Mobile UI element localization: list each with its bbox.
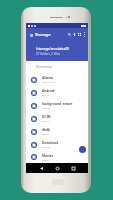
button[interactable]: Search xyxy=(67,32,72,37)
button[interactable]: Home xyxy=(53,164,61,172)
staticText: Apr 15 xyxy=(42,93,50,96)
staticText: Alarms xyxy=(42,76,54,80)
button[interactable]: Alarms xyxy=(26,73,88,86)
staticText: Movies xyxy=(42,154,54,158)
button[interactable]: Menu xyxy=(28,32,34,38)
staticText: dhdb xyxy=(42,128,51,132)
staticText: background_eraser xyxy=(42,102,73,106)
staticText: 27 Folders, 2 Files xyxy=(36,52,60,56)
button[interactable]: Back xyxy=(37,164,45,172)
button[interactable]: Download xyxy=(26,138,88,151)
staticText: May 03 xyxy=(42,106,51,109)
button[interactable]: Sort xyxy=(72,32,77,37)
staticText: Download xyxy=(42,141,58,145)
staticText: Feb 22 xyxy=(42,132,50,135)
button[interactable]: background_eraser xyxy=(26,99,88,112)
staticText: Jun 12 xyxy=(42,119,49,122)
button[interactable]: View mode xyxy=(77,32,82,37)
button[interactable]: More options xyxy=(82,32,87,37)
staticText: /storage/emulated/0 xyxy=(36,46,70,51)
staticText: Android xyxy=(42,89,55,93)
staticText: DCIM xyxy=(42,115,51,119)
staticText: Jan 01, 2018 xyxy=(42,80,56,83)
button[interactable]: Add xyxy=(79,146,86,153)
staticText: Storage xyxy=(35,32,51,38)
staticText: Mar 08 xyxy=(42,145,50,148)
button[interactable]: Android xyxy=(26,86,88,99)
staticText: Apr 01 xyxy=(42,158,50,161)
button[interactable]: DCIM xyxy=(26,112,88,125)
staticText: Directories xyxy=(36,65,53,69)
button[interactable]: Movies xyxy=(26,151,88,163)
button[interactable]: dhdb xyxy=(26,125,88,138)
button[interactable]: Recents xyxy=(69,164,77,172)
